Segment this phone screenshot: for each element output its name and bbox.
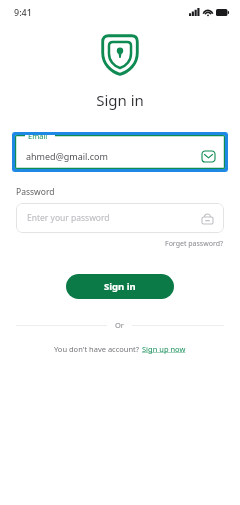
staticText: You don't have account? — [54, 344, 142, 354]
button[interactable]: Sign in — [66, 274, 174, 299]
staticText: Enter your password — [27, 212, 110, 224]
staticText: 9:41 — [14, 6, 32, 18]
button[interactable]: Sign up now — [142, 344, 186, 354]
button[interactable]: Enter your password — [16, 203, 224, 233]
staticText: Password — [16, 186, 55, 198]
staticText: Or — [115, 320, 124, 330]
staticText: Email — [28, 135, 48, 141]
staticText: Sign in — [104, 280, 136, 293]
button[interactable]: Email — [199, 147, 217, 165]
button[interactable]: Email — [15, 135, 225, 169]
staticText: Sign in — [0, 90, 240, 110]
staticText: ahmed@gmail.com — [26, 150, 108, 162]
button[interactable]: Show password — [199, 210, 215, 226]
button[interactable]: Forget password? — [165, 239, 224, 249]
